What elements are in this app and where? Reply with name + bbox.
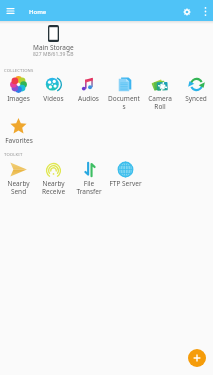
- staticText: Home: [29, 8, 47, 16]
- button[interactable]: Videos: [36, 76, 71, 103]
- button[interactable]: Images: [1, 76, 36, 103]
- staticText: Synced: [185, 94, 207, 103]
- staticText: FTP Server: [109, 179, 142, 188]
- button[interactable]: Favorites: [1, 118, 36, 145]
- button[interactable]: File Transfer: [71, 161, 107, 196]
- staticText: File Transfer: [72, 179, 106, 196]
- button[interactable]: FTP Server: [107, 161, 143, 188]
- staticText: TOOLKIT: [4, 152, 23, 158]
- button[interactable]: Main Storage: [18, 25, 89, 59]
- staticText: Videos: [43, 94, 64, 103]
- button[interactable]: Nearby Send: [1, 161, 36, 196]
- button[interactable]: Nearby Receive: [36, 161, 71, 196]
- button[interactable]: Documents: [106, 76, 142, 111]
- staticText: 827 MB/61.39 GB: [33, 51, 74, 58]
- staticText: Camera Roll: [143, 94, 177, 111]
- staticText: Nearby Receive: [37, 179, 70, 196]
- button[interactable]: Audios: [71, 76, 106, 103]
- staticText: Documents: [107, 94, 141, 111]
- button[interactable]: Settings: [178, 1, 195, 22]
- button[interactable]: More options: [197, 1, 213, 22]
- staticText: Main Storage: [33, 43, 74, 52]
- staticText: Nearby Send: [2, 179, 35, 196]
- button[interactable]: Synced: [178, 76, 213, 103]
- button[interactable]: Menu: [2, 0, 19, 21]
- button[interactable]: Camera Roll: [142, 76, 178, 111]
- staticText: Favorites: [5, 136, 33, 145]
- staticText: Audios: [78, 94, 99, 103]
- staticText: Images: [7, 94, 30, 103]
- button[interactable]: Add: [188, 349, 206, 367]
- staticText: COLLECTIONS: [4, 68, 34, 74]
